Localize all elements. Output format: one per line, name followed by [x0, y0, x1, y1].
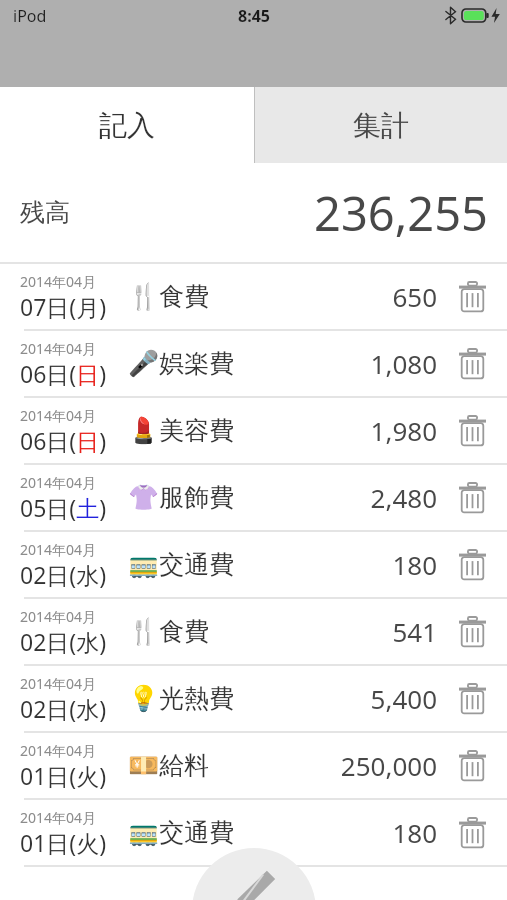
staticText: 236,255 — [314, 181, 488, 245]
button[interactable]: 2014年04月 — [0, 465, 507, 530]
staticText: 🚃交通費 — [128, 549, 235, 580]
staticText: 07日(月) — [20, 291, 107, 322]
button[interactable]: Delete — [437, 465, 507, 530]
staticText: 集計 — [353, 108, 409, 143]
staticText: 1,080 — [370, 346, 437, 381]
staticText: 2014年04月 — [20, 406, 97, 425]
staticText: 8:45 — [238, 5, 270, 27]
button[interactable]: Delete — [437, 331, 507, 396]
staticText: 650 — [392, 279, 437, 314]
staticText: iPod — [13, 5, 47, 27]
staticText: 2014年04月 — [20, 674, 97, 693]
button[interactable]: Delete — [437, 733, 507, 798]
staticText: 180 — [392, 547, 437, 582]
button[interactable]: 2014年04月 — [0, 398, 507, 463]
staticText: 👚服飾費 — [128, 482, 235, 513]
staticText: 02日(水) — [20, 626, 107, 657]
staticText: 🚃交通費 — [128, 817, 235, 848]
staticText: 2014年04月 — [20, 339, 97, 358]
button[interactable]: Delete — [437, 264, 507, 329]
staticText: 2014年04月 — [20, 607, 97, 626]
staticText: 2,480 — [370, 480, 437, 515]
staticText: 2014年04月 — [20, 808, 97, 827]
button[interactable]: 2014年04月 — [0, 666, 507, 731]
button[interactable]: Delete — [437, 800, 507, 865]
staticText: 2014年04月 — [20, 741, 97, 760]
staticText: 180 — [392, 815, 437, 850]
staticText: 2014年04月 — [20, 540, 97, 559]
staticText: 🍴食費 — [128, 616, 210, 647]
staticText: 250,000 — [340, 748, 437, 783]
staticText: 1,980 — [370, 413, 437, 448]
button[interactable]: 2014年04月 — [0, 800, 507, 865]
staticText: 🎤娯楽費 — [128, 348, 235, 379]
button[interactable]: Delete — [437, 599, 507, 664]
button[interactable]: 集計 — [255, 87, 507, 163]
button[interactable]: 2014年04月 — [0, 599, 507, 664]
staticText: 💴給料 — [128, 750, 210, 781]
staticText: 2014年04月 — [20, 272, 97, 291]
staticText: 💡光熱費 — [128, 683, 235, 714]
button[interactable]: 2014年04月 — [0, 264, 507, 329]
staticText: 01日(火) — [20, 827, 107, 858]
staticText: 05日(土) — [20, 492, 107, 523]
button[interactable]: 2014年04月 — [0, 532, 507, 597]
staticText: 記入 — [99, 108, 155, 143]
staticText: 06日(日) — [20, 358, 107, 389]
staticText: 残高 — [20, 197, 70, 228]
staticText: 5,400 — [370, 681, 437, 716]
button[interactable]: 記入 — [0, 87, 254, 163]
staticText: 🍴食費 — [128, 281, 210, 312]
button[interactable]: Add entry — [192, 848, 316, 900]
button[interactable]: 2014年04月 — [0, 331, 507, 396]
staticText: 541 — [392, 614, 437, 649]
staticText: 02日(水) — [20, 559, 107, 590]
staticText: 💄美容費 — [128, 415, 235, 446]
staticText: 02日(水) — [20, 693, 107, 724]
staticText: 01日(火) — [20, 760, 107, 791]
button[interactable]: Delete — [437, 532, 507, 597]
staticText: 2014年04月 — [20, 473, 97, 492]
button[interactable]: Delete — [437, 666, 507, 731]
button[interactable]: 2014年04月 — [0, 733, 507, 798]
button[interactable]: Delete — [437, 398, 507, 463]
staticText: 06日(日) — [20, 425, 107, 456]
